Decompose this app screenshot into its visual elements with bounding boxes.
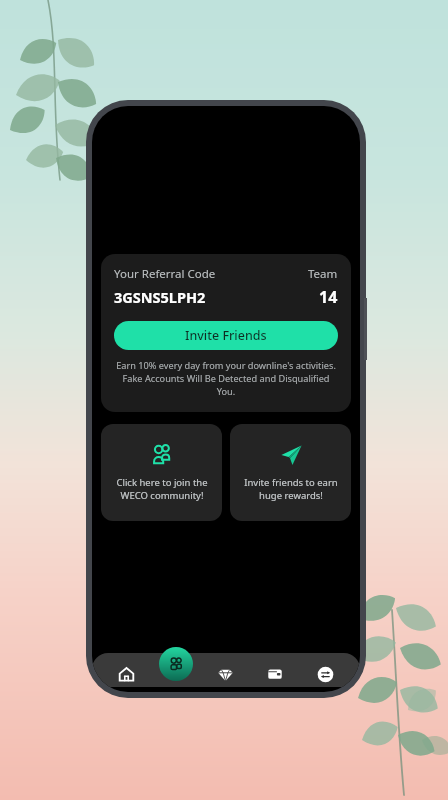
staticText: Click here to join the WECO community!	[116, 476, 208, 502]
button[interactable]: Join WECO community	[101, 424, 222, 521]
button[interactable]: Home	[102, 646, 151, 692]
staticText: Invite friends to earn huge rewards!	[244, 476, 338, 502]
staticText: 14	[319, 286, 338, 308]
staticText: Earn 10% every day from your downline's …	[114, 359, 338, 398]
button[interactable]: Rewards	[200, 646, 250, 692]
button[interactable]: Wallet	[250, 646, 300, 692]
staticText: Invite Friends	[185, 327, 267, 344]
button[interactable]: Swap	[300, 646, 350, 692]
staticText: 3GSNS5LPH2	[114, 287, 206, 307]
button[interactable]: Team	[159, 647, 193, 681]
button[interactable]: Invite Friends	[114, 321, 338, 350]
staticText: Team	[308, 266, 338, 282]
staticText: Your Referral Code	[114, 266, 216, 282]
button[interactable]: Invite friends	[230, 424, 351, 521]
button[interactable]: Team	[151, 646, 200, 692]
